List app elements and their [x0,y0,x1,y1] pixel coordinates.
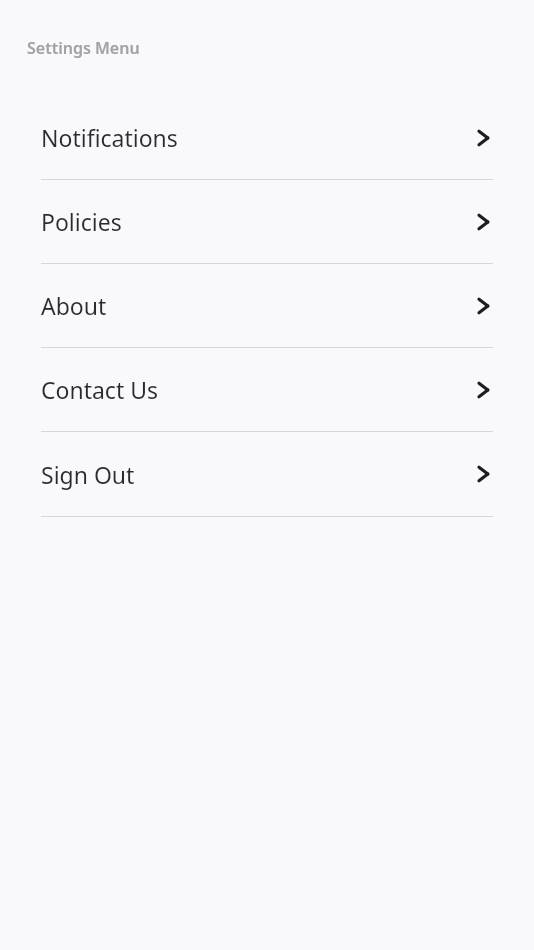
button[interactable]: Policies [0,180,534,263]
staticText: Sign Out [41,459,135,490]
staticText: About [41,290,107,321]
button[interactable]: Sign Out [0,432,534,516]
button[interactable]: About [0,264,534,347]
staticText: Policies [41,206,122,237]
staticText: Notifications [41,122,178,153]
button[interactable]: Contact Us [0,348,534,431]
staticText: Contact Us [41,374,159,405]
button[interactable]: Notifications [0,96,534,179]
staticText: Settings Menu [27,37,140,59]
